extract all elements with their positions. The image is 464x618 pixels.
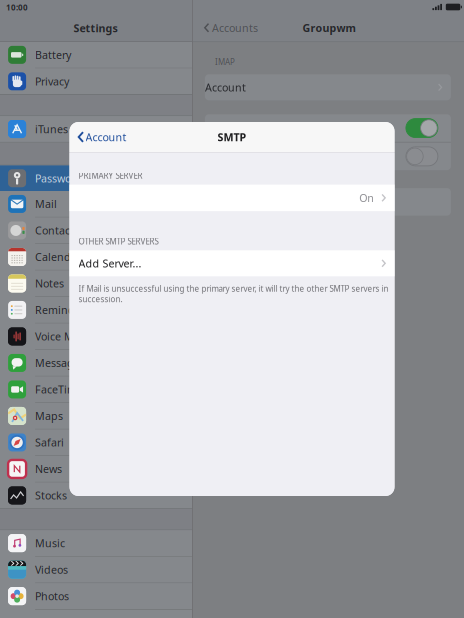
staticText: Account bbox=[85, 130, 126, 144]
staticText: Photos bbox=[35, 589, 69, 603]
staticText: FaceTime bbox=[35, 382, 83, 397]
button[interactable]: Reminders bbox=[0, 297, 192, 323]
staticText: Notes bbox=[35, 276, 64, 291]
button[interactable]: Videos bbox=[0, 557, 192, 582]
staticText: Add Server... bbox=[78, 256, 141, 270]
button[interactable]: Notes bbox=[0, 271, 192, 296]
staticText: 10:00 bbox=[6, 2, 28, 13]
staticText: Mail bbox=[35, 197, 57, 211]
button[interactable]: Music bbox=[0, 530, 192, 556]
staticText: Videos bbox=[35, 563, 68, 577]
button[interactable]: FaceTime bbox=[0, 377, 192, 402]
staticText: Maps bbox=[35, 409, 63, 423]
button[interactable]: Messages bbox=[0, 350, 192, 376]
button[interactable]: Turn on bbox=[406, 147, 438, 166]
staticText: Contacts bbox=[35, 223, 79, 238]
button[interactable]: iTunes bbox=[0, 116, 192, 142]
staticText: Music bbox=[35, 536, 65, 550]
staticText: If Mail is unsuccessful using the primar… bbox=[78, 283, 388, 304]
staticText: OTHER SMTP SERVERS bbox=[78, 236, 158, 247]
button[interactable]: Voice Memos bbox=[0, 324, 192, 349]
staticText: Groupwm bbox=[302, 21, 355, 35]
staticText: IMAP bbox=[215, 56, 235, 67]
staticText: Privacy bbox=[35, 74, 69, 88]
button[interactable]: News bbox=[0, 456, 192, 482]
button[interactable]: Add Server... bbox=[69, 250, 394, 276]
staticText: Messages bbox=[35, 356, 85, 370]
button[interactable]: Maps bbox=[0, 403, 192, 429]
button[interactable]: On bbox=[69, 185, 394, 211]
button[interactable]: Mail bbox=[0, 191, 192, 217]
button[interactable]: Privacy bbox=[0, 68, 192, 94]
button[interactable]: Safari bbox=[0, 430, 192, 455]
staticText: Passwords bbox=[35, 171, 87, 185]
button[interactable]: Contacts bbox=[0, 218, 192, 243]
staticText: PRIMARY SERVER bbox=[78, 170, 142, 181]
button[interactable]: Accounts bbox=[204, 17, 258, 39]
staticText: News bbox=[35, 462, 62, 476]
button[interactable]: Account bbox=[205, 74, 451, 100]
staticText: Safari bbox=[35, 435, 64, 450]
staticText: Account bbox=[205, 80, 246, 94]
staticText: Accounts bbox=[212, 21, 258, 35]
button[interactable]: Turn off bbox=[406, 118, 438, 137]
staticText: SMTP bbox=[217, 130, 246, 144]
button[interactable]: Stocks bbox=[0, 483, 192, 508]
button[interactable]: Battery bbox=[0, 42, 192, 68]
staticText: iTunes bbox=[35, 122, 68, 136]
staticText: Calendar bbox=[35, 250, 81, 264]
staticText: Settings bbox=[74, 21, 118, 35]
staticText: Battery bbox=[35, 48, 71, 62]
button[interactable]: Calendar bbox=[0, 244, 192, 270]
button[interactable]: Account bbox=[77, 125, 126, 149]
staticText: Stocks bbox=[35, 488, 67, 503]
staticText: On bbox=[359, 191, 374, 205]
staticText: Reminders bbox=[35, 303, 90, 317]
staticText: Voice Memos bbox=[35, 329, 101, 344]
button[interactable]: Passwords bbox=[0, 165, 192, 191]
button[interactable]: Photos bbox=[0, 583, 192, 609]
